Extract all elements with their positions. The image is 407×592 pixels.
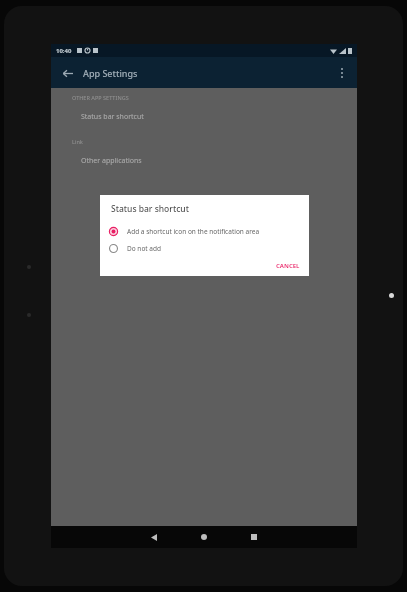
button[interactable]: Recents xyxy=(239,526,269,548)
button[interactable]: Add a shortcut icon on the notification … xyxy=(100,223,309,240)
staticText: CANCEL xyxy=(276,262,300,270)
button[interactable]: Back xyxy=(139,526,169,548)
staticText: Add a shortcut icon on the notification … xyxy=(127,227,260,236)
button[interactable]: Other applications xyxy=(51,150,357,172)
button[interactable]: Do not add xyxy=(100,240,309,257)
button[interactable]: Back xyxy=(57,63,77,83)
button[interactable]: Status bar shortcut xyxy=(51,106,357,128)
staticText: Other applications xyxy=(81,156,142,166)
staticText: Status bar shortcut xyxy=(81,112,144,122)
button[interactable]: More options xyxy=(332,63,352,83)
staticText: App Settings xyxy=(83,67,138,79)
button[interactable]: Home xyxy=(189,526,219,548)
staticText: Link xyxy=(72,138,83,145)
staticText: OTHER APP SETTINGS xyxy=(72,94,129,101)
staticText: Status bar shortcut xyxy=(111,203,189,215)
button[interactable]: CANCEL xyxy=(272,260,304,272)
staticText: Do not add xyxy=(127,244,161,253)
staticText: 10:40 xyxy=(56,47,72,55)
